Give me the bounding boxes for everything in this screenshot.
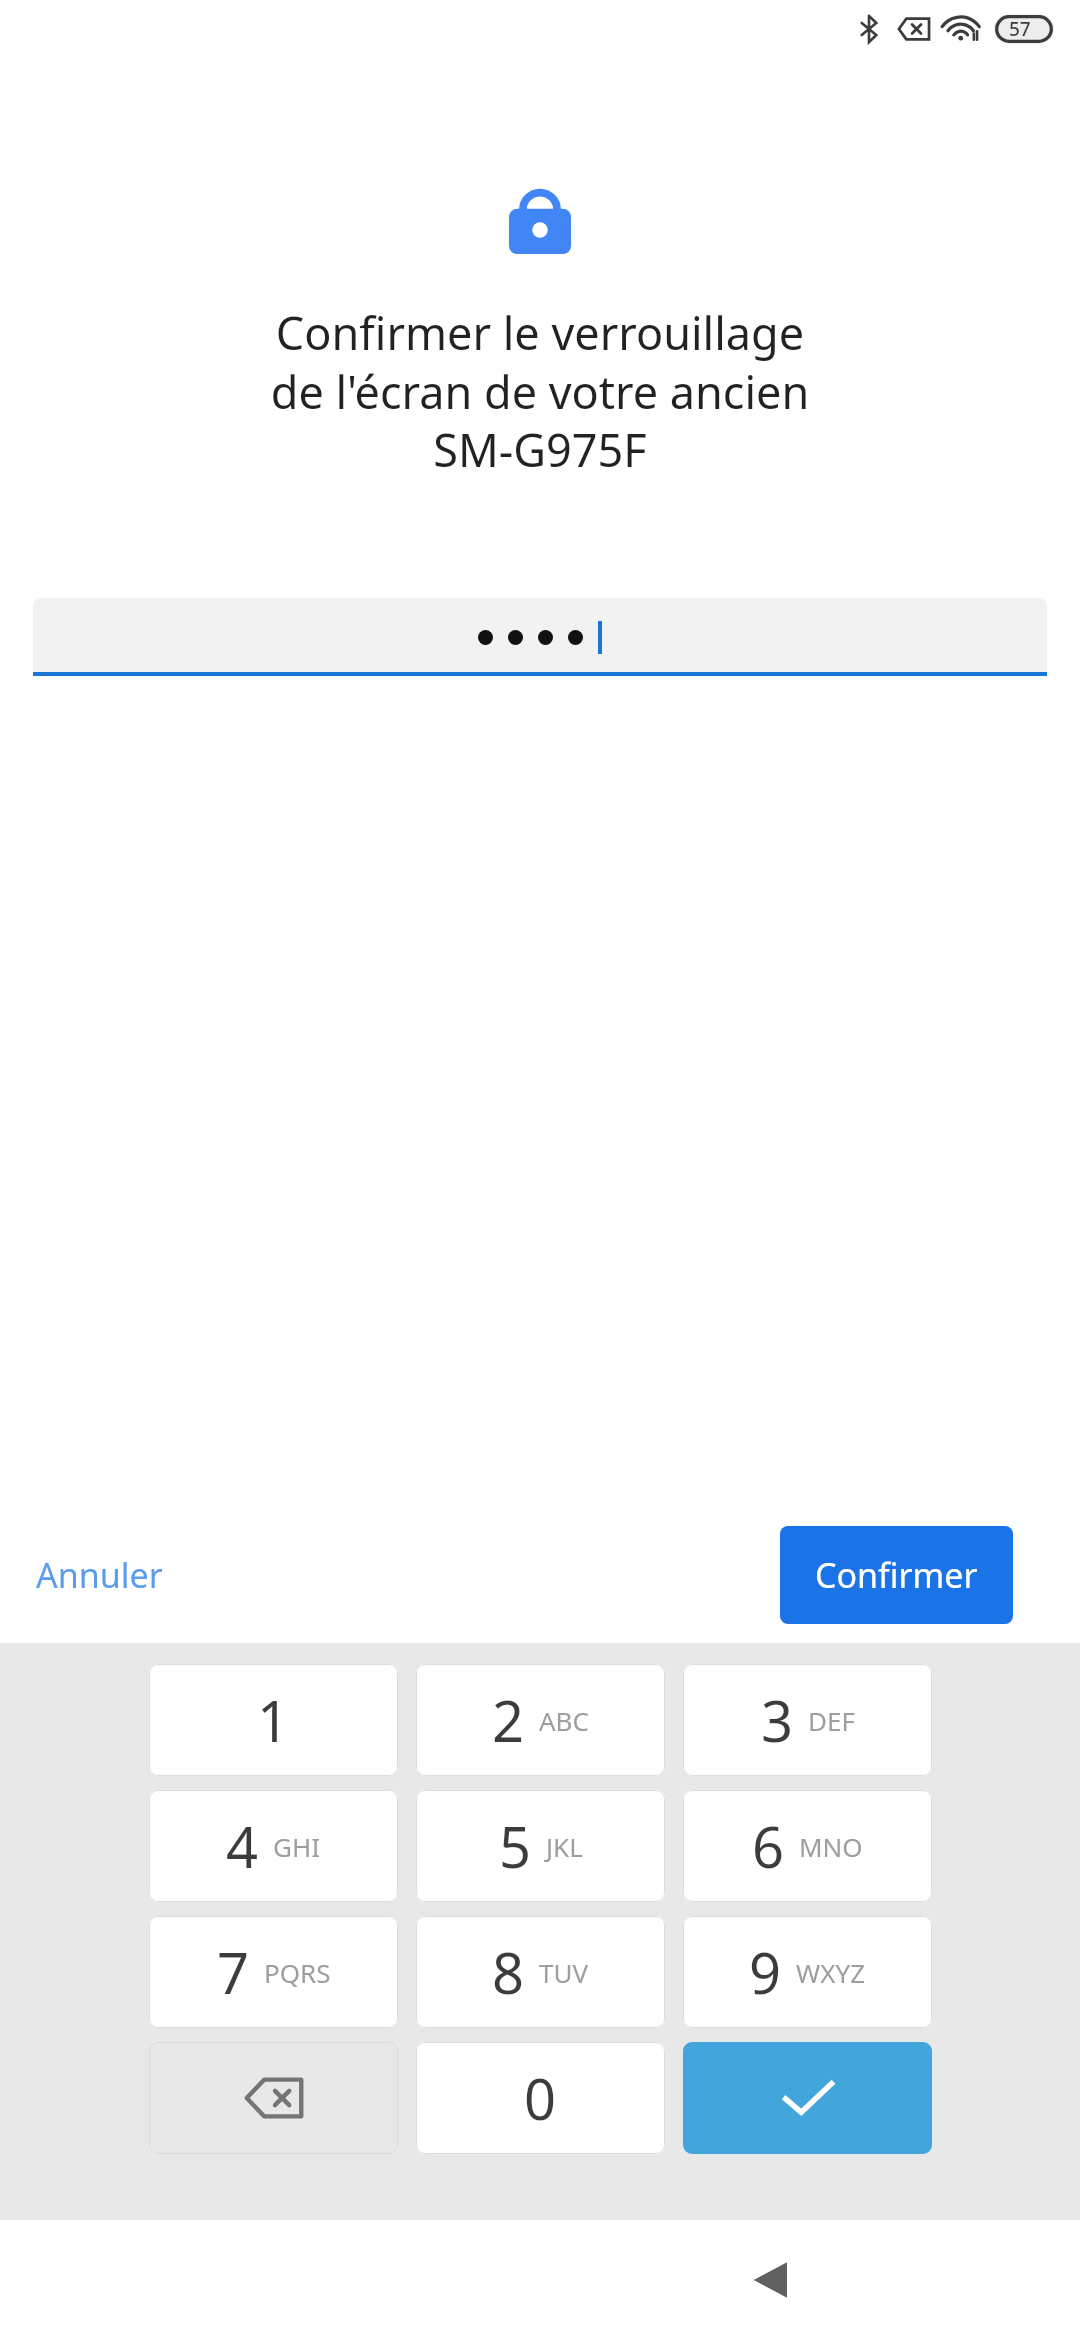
staticText: 1	[257, 1682, 290, 1758]
staticText: Confirmer le verrouillage de l'écran de …	[40, 302, 1040, 480]
button[interactable]	[33, 598, 1047, 676]
button[interactable]: 5	[416, 1790, 665, 1902]
button[interactable]: 9	[683, 1916, 932, 2028]
staticText: 5	[499, 1808, 532, 1884]
button[interactable]: 8	[416, 1916, 665, 2028]
staticText: 2	[492, 1682, 525, 1758]
button[interactable]: 7	[149, 1916, 398, 2028]
staticText: TUV	[539, 1955, 589, 1990]
button[interactable]: 2	[416, 1664, 665, 1776]
staticText: PQRS	[264, 1955, 331, 1990]
button[interactable]: Enter	[683, 2042, 932, 2154]
staticText: JKL	[546, 1829, 583, 1864]
staticText: WXYZ	[796, 1955, 866, 1990]
staticText: 6	[752, 1808, 785, 1884]
button[interactable]: 6	[683, 1790, 932, 1902]
button[interactable]: 1	[149, 1664, 398, 1776]
button[interactable]: 0	[416, 2042, 665, 2154]
staticText: 8	[492, 1934, 525, 2010]
staticText: DEF	[808, 1703, 855, 1738]
button[interactable]: Backspace	[149, 2042, 398, 2154]
button[interactable]: Back	[722, 2232, 818, 2328]
staticText: ABC	[539, 1703, 589, 1738]
other: Lock	[509, 180, 571, 254]
staticText: 9	[749, 1934, 782, 2010]
staticText: Confirmer	[815, 1552, 978, 1598]
button[interactable]: 3	[683, 1664, 932, 1776]
button[interactable]: Confirmer	[780, 1526, 1013, 1624]
staticText: 3	[761, 1682, 794, 1758]
staticText: 4	[226, 1808, 259, 1884]
button[interactable]: 4	[149, 1790, 398, 1902]
staticText: 7	[217, 1934, 250, 2010]
button[interactable]: Annuler	[28, 1544, 171, 1606]
staticText: GHI	[273, 1829, 321, 1864]
staticText: 0	[524, 2060, 557, 2136]
staticText: Annuler	[36, 1552, 163, 1598]
staticText: MNO	[799, 1829, 863, 1864]
staticText: 57	[1009, 16, 1031, 42]
